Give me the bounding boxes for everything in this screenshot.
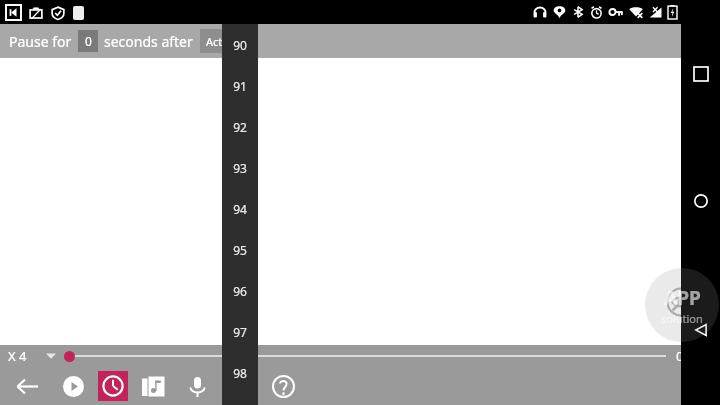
button[interactable]: 0 [78, 30, 98, 52]
button[interactable]: Speed options [43, 348, 59, 364]
staticText: 95 [233, 242, 247, 258]
button[interactable]: 91 [222, 65, 258, 106]
button[interactable]: 93 [222, 147, 258, 188]
staticText: APP [664, 285, 701, 311]
staticText: 91 [233, 78, 247, 94]
staticText: 90 [233, 37, 247, 53]
button[interactable]: Record audio [182, 371, 212, 401]
staticText: solution [661, 311, 703, 326]
staticText: seconds after [104, 32, 193, 51]
staticText: 97 [233, 324, 247, 340]
staticText: 0 [85, 33, 92, 49]
button[interactable]: Music library [138, 371, 168, 401]
staticText: 00:00 [676, 347, 710, 365]
staticText: 98 [233, 365, 247, 381]
staticText: X 4 [8, 347, 27, 365]
button[interactable]: 96 [222, 270, 258, 311]
button[interactable]: 90 [222, 24, 258, 65]
button[interactable]: Action [200, 29, 245, 53]
staticText: 92 [233, 119, 247, 135]
button[interactable]: 95 [222, 229, 258, 270]
staticText: Pause for [9, 32, 72, 51]
button[interactable]: Back [685, 314, 717, 346]
button[interactable] [64, 351, 75, 362]
button[interactable]: Help [268, 371, 298, 401]
button[interactable]: Home [685, 185, 717, 217]
button[interactable]: 97 [222, 311, 258, 352]
button[interactable]: 94 [222, 188, 258, 229]
button[interactable]: Back [12, 371, 42, 401]
staticText: 96 [233, 283, 247, 299]
button[interactable]: 98 [222, 352, 258, 393]
staticText: 93 [233, 160, 247, 176]
button[interactable]: Hidden [664, 285, 698, 319]
button[interactable]: Recents [685, 58, 717, 90]
staticText: Action [206, 34, 239, 49]
button[interactable]: Video [226, 371, 256, 401]
button[interactable]: Play [58, 371, 88, 401]
button[interactable]: 92 [222, 106, 258, 147]
staticText: 94 [233, 201, 247, 217]
button[interactable]: Timer [98, 371, 128, 401]
